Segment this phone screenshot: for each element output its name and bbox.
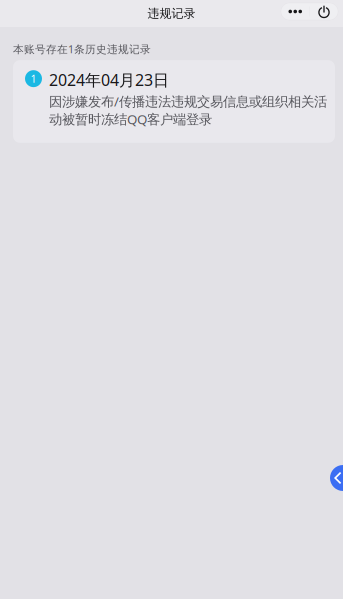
staticText: 违规记录: [147, 6, 195, 21]
staticText: 1: [30, 72, 36, 86]
staticText: 因涉嫌发布/传播违法违规交易信息或组织相关活动被暂时冻结QQ客户端登录: [49, 92, 327, 128]
staticText: 本账号存在1条历史违规记录: [13, 42, 151, 56]
staticText: 2024年04月23日: [49, 69, 169, 90]
button[interactable]: Close mini program: [310, 3, 338, 20]
button[interactable]: Back: [330, 465, 343, 491]
button[interactable]: More: [281, 3, 309, 20]
